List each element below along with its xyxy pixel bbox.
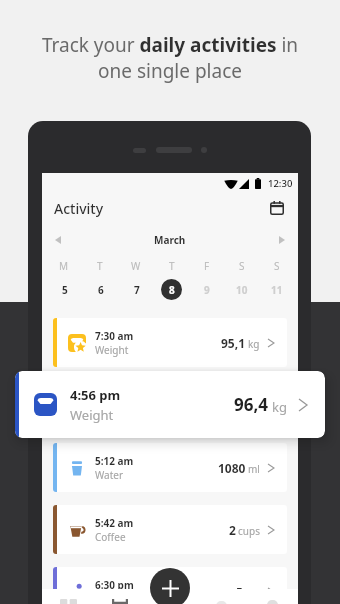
button[interactable]: Calendar [267,198,287,218]
staticText: S [274,259,280,273]
staticText: Weight [95,405,129,419]
staticText: 5 [62,283,68,297]
button[interactable]: 5 [54,279,75,300]
button[interactable]: 6:30 pm [53,567,287,604]
staticText: 2 [229,522,236,538]
button[interactable]: Previous month [50,232,66,248]
staticText: 96,4 [234,393,269,416]
button[interactable]: 5:12 am [53,443,287,492]
staticText: 5 [236,584,243,600]
staticText: 9 [204,283,210,297]
staticText: F [204,259,210,273]
staticText: 12:30 [268,177,293,190]
staticText: March [154,233,186,247]
staticText: Coffee [95,530,126,544]
staticText: 1080 [218,460,246,476]
staticText: Weight [70,406,114,424]
button[interactable]: 8 [161,279,182,300]
button[interactable]: 5:42 am [53,505,287,554]
staticText: Track your daily activities in one singl… [26,32,314,84]
button[interactable]: 7:30 am [53,318,287,367]
button[interactable]: 9 [196,279,217,300]
staticText: ml [248,462,260,476]
staticText: Run [95,592,114,604]
button[interactable]: Activity [94,589,145,604]
staticText: kg [272,398,287,416]
staticText: 5:42 am [95,516,134,530]
button[interactable]: 4:56 pm [53,380,287,429]
button[interactable]: 10 [231,279,252,300]
button[interactable]: 11 [266,279,287,300]
button[interactable]: 6 [90,279,111,300]
staticText: 8 [169,283,175,297]
staticText: cups [238,524,260,538]
staticText: Activity [54,199,104,218]
button[interactable]: Dashboard [42,589,94,604]
staticText: Weight [95,343,129,357]
staticText: Water [95,468,124,482]
button[interactable]: 4:56 pm [15,371,325,438]
staticText: 4:56 pm [95,391,134,405]
staticText: T [97,259,103,273]
staticText: T [169,259,175,273]
button[interactable]: Profile [247,589,298,604]
button[interactable]: Stats [196,589,247,604]
staticText: kg [248,399,260,413]
staticText: 7 [134,283,140,297]
staticText: 11 [271,283,283,297]
staticText: W [131,259,141,273]
staticText: 96,4 [221,397,246,413]
staticText: 7:30 am [95,329,134,343]
staticText: 6 [98,283,104,297]
button[interactable]: Add activity [150,568,190,604]
staticText: kg [248,337,260,351]
staticText: 95,1 [221,335,246,351]
button[interactable]: Next month [274,232,290,248]
staticText: M [59,259,69,273]
button[interactable]: 7 [126,279,147,300]
staticText: 5:12 am [95,454,134,468]
staticText: 10 [236,283,248,297]
staticText: 6:30 pm [95,578,134,592]
staticText: 4:56 pm [70,386,121,404]
staticText: S [239,259,245,273]
